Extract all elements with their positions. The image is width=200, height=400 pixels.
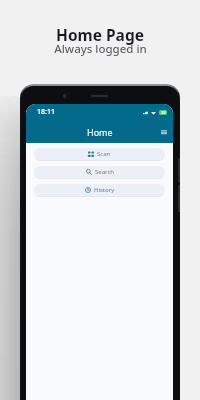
staticText: 18:11 (37, 107, 55, 117)
button[interactable]: Scan (34, 148, 165, 160)
staticText: Home Page (56, 24, 144, 45)
button[interactable]: Search (34, 166, 165, 178)
staticText: Home (87, 126, 113, 138)
staticText: Search (95, 168, 114, 176)
button[interactable]: History (34, 184, 165, 196)
staticText: Scan (97, 150, 111, 158)
staticText: History (94, 186, 115, 194)
button[interactable]: Menu (161, 129, 167, 135)
staticText: 38 (161, 110, 166, 115)
staticText: Always logged in (54, 41, 147, 57)
